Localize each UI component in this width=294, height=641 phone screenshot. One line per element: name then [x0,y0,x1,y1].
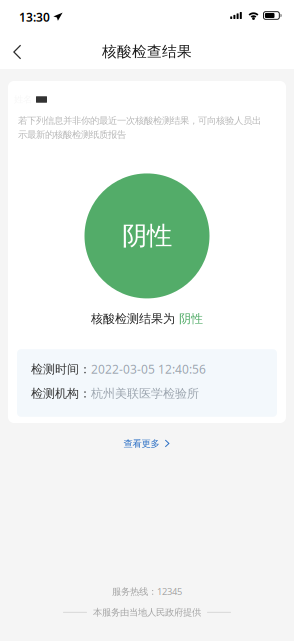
staticText: 13:30 [19,9,50,25]
staticText: 本服务由当地人民政府提供 [93,606,201,618]
staticText: 检测机构： [31,386,91,401]
button[interactable]: 返回 [0,31,36,67]
staticText: 核酸检测结果为 [91,311,179,326]
button[interactable]: 查看更多 [111,431,182,456]
staticText: 查看更多 [123,438,159,449]
staticText: 2022-03-05 12:40:56 [91,361,206,377]
staticText: 阴性 [122,220,172,251]
staticText: 阴性 [179,311,203,326]
staticText: 若下列信息并非你的最近一次核酸检测结果，可向核验人员出 示最新的核酸检测纸质报告 [18,115,261,140]
staticText: 检测时间： [31,362,91,376]
staticText: 杭州美联医学检验所 [91,386,199,401]
staticText: 核酸检查结果 [102,42,192,60]
staticText: 服务热线：12345 [112,585,182,597]
